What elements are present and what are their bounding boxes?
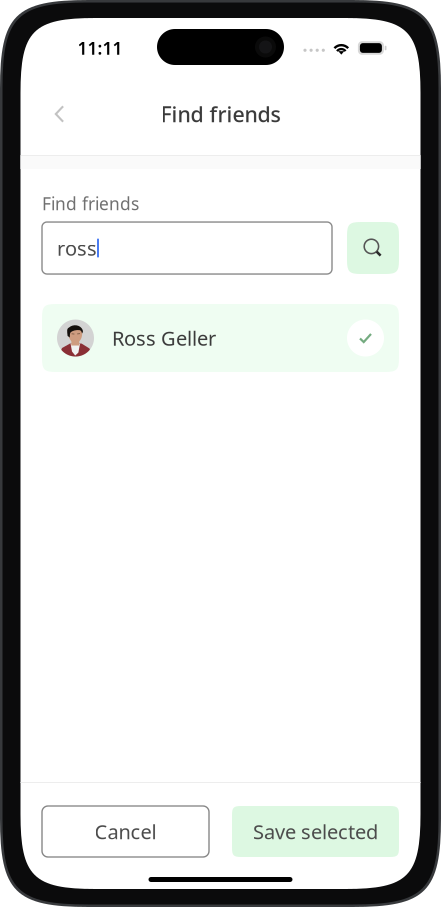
- button[interactable]: Cancel: [42, 806, 209, 857]
- button[interactable]: Save selected: [232, 806, 399, 857]
- staticText: 11:11: [77, 36, 122, 59]
- staticText: Save selected: [253, 818, 378, 845]
- staticText: ross: [57, 235, 97, 261]
- button[interactable]: Back: [41, 94, 77, 134]
- staticText: Ross Geller: [112, 325, 216, 351]
- staticText: Find friends: [42, 192, 139, 215]
- button[interactable]: Search: [347, 222, 399, 274]
- staticText: Cancel: [94, 818, 156, 845]
- button[interactable]: Ross Geller: [42, 304, 399, 372]
- staticText: Find friends: [160, 100, 280, 128]
